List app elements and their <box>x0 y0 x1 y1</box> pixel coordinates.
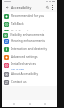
staticText: Visibility enhancements <box>10 33 45 37</box>
button[interactable]: Advanced settings <box>2 53 57 61</box>
button[interactable]: Back <box>42 101 48 107</box>
staticText: TalkBack <box>11 22 24 26</box>
staticText: Contact us <box>11 80 27 84</box>
button[interactable]: Visibility enhancements <box>2 31 57 39</box>
button[interactable]: Visibility enhancements <box>2 28 57 36</box>
button[interactable]: Contact us <box>2 78 57 86</box>
button[interactable]: Recents <box>11 101 17 107</box>
staticText: Interaction and dexterity <box>11 47 47 51</box>
staticText: Visibility enhancements <box>11 30 46 34</box>
staticText: Tap to view <box>11 67 25 70</box>
staticText: Hearing enhancements <box>11 39 46 43</box>
button[interactable]: Search <box>45 5 50 10</box>
staticText: Recommended for you <box>11 14 45 18</box>
button[interactable]: Hearing enhancements <box>2 37 57 45</box>
staticText: Installed services <box>11 62 36 66</box>
button[interactable]: Home <box>27 101 33 107</box>
staticText: Accessibility <box>11 5 32 10</box>
button[interactable]: TalkBack <box>2 20 57 28</box>
button[interactable]: Back <box>4 4 10 10</box>
button[interactable]: More options <box>50 5 55 10</box>
button[interactable]: Installed services <box>2 61 57 70</box>
button[interactable]: Recommended for you <box>2 12 57 20</box>
staticText: Advanced settings <box>11 55 38 59</box>
button[interactable]: Interaction and dexterity <box>2 45 57 53</box>
button[interactable]: About Accessibility <box>2 70 57 78</box>
staticText: About Accessibility <box>11 72 39 76</box>
